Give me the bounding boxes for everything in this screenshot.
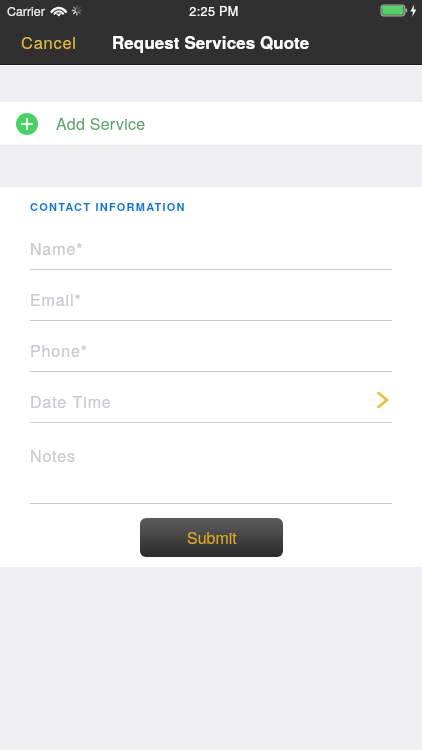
staticText: Add Service [56, 112, 146, 135]
button[interactable]: Submit [140, 518, 283, 557]
staticText: Phone* [30, 339, 88, 362]
button[interactable]: Date Time [0, 372, 422, 423]
staticText: Cancel [21, 30, 77, 54]
button[interactable]: Phone* [0, 321, 422, 372]
staticText: 2:25 PM [3, 2, 422, 20]
staticText: Email* [30, 288, 82, 311]
staticText: Date Time [30, 390, 112, 413]
staticText: Carrier [7, 2, 45, 20]
button[interactable]: Notes [0, 423, 422, 504]
staticText: Notes [30, 444, 76, 467]
staticText: Name* [30, 237, 84, 260]
other: Choose date and time [376, 391, 390, 409]
staticText: Request Services Quote [112, 30, 310, 54]
button[interactable]: Cancel [0, 26, 91, 64]
button[interactable]: Email* [0, 270, 422, 321]
button[interactable]: Name* [0, 219, 422, 270]
staticText: CONTACT INFORMATION [30, 199, 186, 215]
staticText: Submit [187, 526, 237, 549]
button[interactable]: Add Service [0, 102, 422, 145]
